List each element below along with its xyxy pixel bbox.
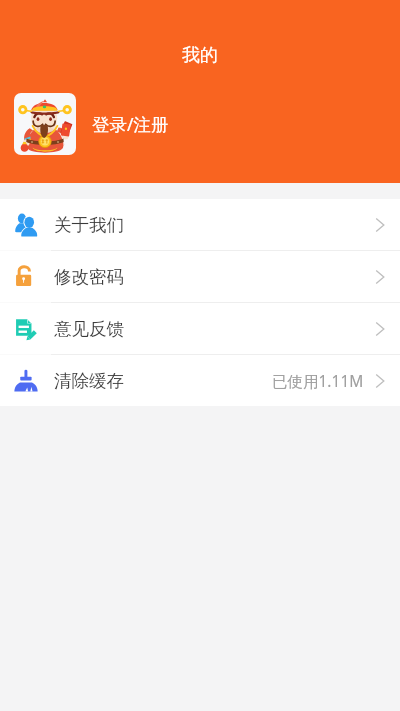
- button[interactable]: 意见反馈: [0, 303, 400, 354]
- button[interactable]: Login or register: [14, 93, 169, 155]
- staticText: 意见反馈: [54, 318, 124, 340]
- staticText: 登录/注册: [92, 112, 169, 136]
- staticText: 我的: [0, 44, 400, 67]
- staticText: 清除缓存: [54, 370, 124, 392]
- button[interactable]: 关于我们: [0, 199, 400, 250]
- staticText: 已使用1.11M: [272, 370, 364, 391]
- staticText: 修改密码: [54, 266, 124, 288]
- button[interactable]: 修改密码: [0, 251, 400, 302]
- staticText: 关于我们: [54, 214, 124, 236]
- button[interactable]: 清除缓存: [0, 355, 400, 406]
